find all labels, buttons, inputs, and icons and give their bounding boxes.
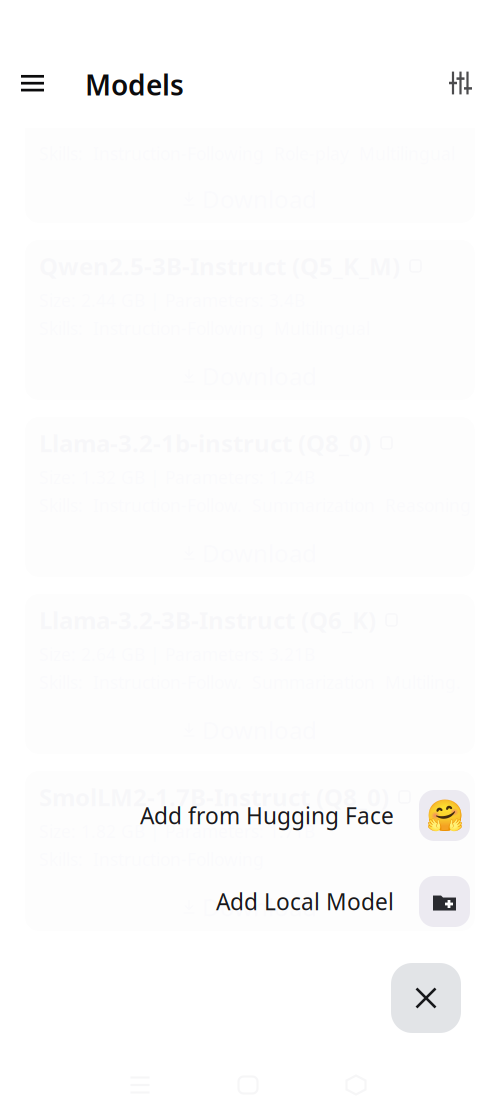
button[interactable]: Settings [346, 1067, 366, 1103]
staticText: Size: 1.82 GB | Parameters: 1.71B [39, 820, 315, 843]
button[interactable]: Add Local Model [216, 876, 470, 927]
staticText: Models [85, 66, 184, 103]
staticText: Add Local Model [216, 886, 394, 916]
button[interactable]: Menu [0, 54, 65, 112]
button[interactable]: Chats [238, 1067, 258, 1103]
button[interactable]: Filter [427, 50, 493, 116]
button[interactable]: Add from Hugging Face [140, 790, 470, 841]
staticText: Download [202, 891, 317, 923]
staticText: SmolLM2-1.7B-Instruct (Q8_0) [39, 781, 389, 813]
staticText: Add from Hugging Face [140, 800, 394, 830]
staticText: 🤗 [425, 798, 463, 833]
button[interactable]: Close menu [391, 963, 461, 1033]
